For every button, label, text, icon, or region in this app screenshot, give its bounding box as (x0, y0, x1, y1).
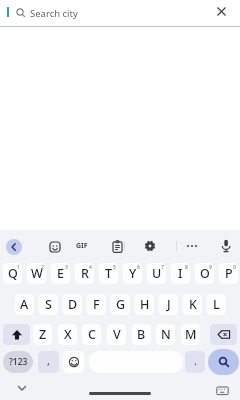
button[interactable] (111, 240, 124, 253)
button[interactable] (144, 240, 156, 252)
button[interactable] (14, 382, 30, 394)
staticText: 4 (89, 264, 92, 271)
staticText: K (189, 296, 197, 313)
staticText: , (47, 353, 50, 368)
staticText: W (31, 265, 43, 282)
staticText: 7 (161, 264, 164, 271)
staticText: 5 (113, 264, 116, 271)
staticText: 9 (209, 264, 212, 271)
staticText: O (200, 265, 210, 282)
staticText: U (152, 265, 162, 282)
staticText: Y (129, 265, 137, 282)
button[interactable] (185, 240, 199, 252)
staticText: 1 (17, 264, 20, 271)
staticText: F (93, 296, 100, 313)
button[interactable]: Y (123, 263, 142, 284)
staticText: 2 (41, 264, 44, 271)
button[interactable] (3, 324, 30, 345)
button[interactable]: V (107, 324, 126, 345)
button[interactable]: Search city (0, 0, 240, 26)
button[interactable]: C (82, 324, 101, 345)
button[interactable]: I (171, 263, 190, 284)
staticText: V (113, 326, 121, 343)
button[interactable]: W (27, 263, 46, 284)
button[interactable]: O (195, 263, 214, 284)
button[interactable]: E (51, 263, 70, 284)
button[interactable]: . (185, 351, 205, 373)
button[interactable] (220, 239, 232, 253)
button[interactable]: X (58, 324, 77, 345)
button[interactable]: U (147, 263, 166, 284)
button[interactable]: Z (33, 324, 52, 345)
button[interactable]: ?123 (3, 351, 33, 373)
staticText: X (64, 326, 72, 343)
staticText: M (185, 326, 197, 343)
staticText: C (88, 326, 96, 343)
button[interactable]: D (63, 294, 82, 315)
staticText: T (105, 265, 113, 282)
staticText: B (137, 326, 146, 343)
button[interactable]: M (181, 324, 200, 345)
staticText: H (140, 296, 150, 313)
button[interactable] (49, 241, 61, 253)
button[interactable]: S (39, 294, 58, 315)
button[interactable]: P (219, 263, 238, 284)
button[interactable]: GIF (73, 239, 91, 253)
button[interactable]: B (132, 324, 151, 345)
staticText: . (194, 353, 197, 368)
staticText: L (213, 296, 220, 313)
button[interactable]: G (111, 294, 130, 315)
staticText: Z (39, 326, 47, 343)
button[interactable] (6, 239, 22, 255)
button[interactable]: Q (3, 263, 22, 284)
button[interactable] (210, 324, 237, 345)
staticText: A (20, 296, 29, 313)
button[interactable] (89, 392, 151, 395)
staticText: R (81, 265, 89, 282)
button[interactable]: A (15, 294, 34, 315)
button[interactable]: H (135, 294, 154, 315)
button[interactable]: K (183, 294, 202, 315)
button[interactable]: N (156, 324, 175, 345)
staticText: Q (8, 265, 18, 282)
staticText: 3 (65, 264, 68, 271)
staticText: ?123 (9, 356, 28, 368)
button[interactable]: , (38, 351, 59, 373)
staticText: N (161, 326, 171, 343)
staticText: GIF (76, 241, 88, 251)
staticText: G (116, 296, 126, 313)
button[interactable] (63, 351, 84, 373)
staticText: I (178, 265, 183, 282)
staticText: D (68, 296, 78, 313)
button[interactable]: J (159, 294, 178, 315)
staticText: 6 (137, 264, 140, 271)
staticText: Search city (30, 7, 78, 20)
button[interactable] (208, 349, 239, 375)
button[interactable] (216, 386, 229, 396)
staticText: 0 (233, 264, 236, 271)
staticText: 8 (185, 264, 188, 271)
button[interactable]: F (87, 294, 106, 315)
staticText: E (57, 265, 64, 282)
staticText: P (225, 265, 233, 282)
button[interactable] (213, 3, 230, 20)
button[interactable]: L (207, 294, 226, 315)
staticText: S (45, 296, 52, 313)
button[interactable]: T (99, 263, 118, 284)
button[interactable]: R (75, 263, 94, 284)
staticText: J (167, 296, 171, 313)
